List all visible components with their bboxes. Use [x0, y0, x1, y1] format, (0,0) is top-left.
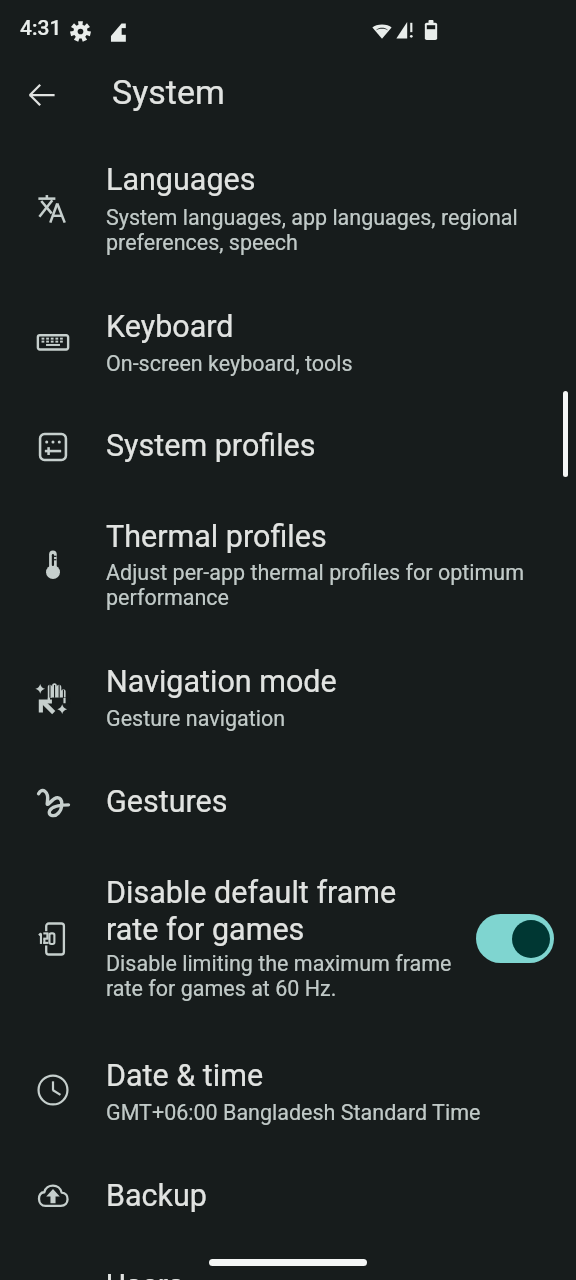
staticText: Keyboard [106, 308, 526, 345]
button[interactable] [0, 899, 576, 979]
staticText: Disable limiting the maximum frame rate … [106, 951, 546, 1001]
staticText: Date & time [106, 1057, 526, 1094]
staticText: Users [106, 1267, 526, 1280]
staticText: Gestures [106, 783, 526, 820]
button[interactable] [0, 1257, 576, 1280]
staticText: System [112, 72, 225, 112]
staticText: GMT+06:00 Bangladesh Standard Time [106, 1100, 546, 1125]
staticText: Languages [106, 161, 526, 198]
staticText: Adjust per-app thermal profiles for opti… [106, 560, 546, 610]
button[interactable]: Back [14, 67, 70, 123]
staticText: Gesture navigation [106, 706, 546, 731]
button[interactable] [0, 525, 576, 605]
button[interactable] [0, 1155, 576, 1235]
staticText: Navigation mode [106, 663, 526, 700]
staticText: On-screen keyboard, tools [106, 351, 546, 376]
button[interactable] [0, 1050, 576, 1130]
button[interactable] [0, 302, 576, 382]
staticText: Thermal profiles [106, 518, 526, 555]
button[interactable]: Toggle frame rate [476, 914, 554, 963]
button[interactable] [0, 169, 576, 249]
staticText: Disable default frame rate for games [106, 874, 526, 948]
staticText: Backup [106, 1177, 526, 1214]
staticText: 4:31 [20, 16, 62, 41]
button[interactable] [0, 658, 576, 738]
button[interactable] [0, 763, 576, 843]
button[interactable] [0, 407, 576, 487]
staticText: System languages, app languages, regiona… [106, 205, 546, 255]
staticText: System profiles [106, 427, 526, 464]
